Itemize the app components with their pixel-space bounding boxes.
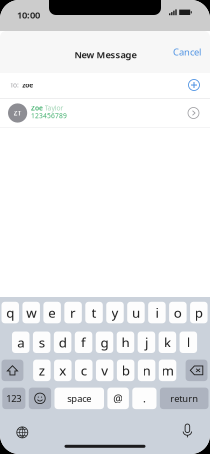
button[interactable]: Dictation — [176, 421, 198, 441]
staticText: o — [174, 304, 182, 321]
button[interactable]: x — [54, 360, 71, 381]
staticText: g — [100, 333, 108, 351]
staticText: 123 — [6, 392, 21, 405]
button[interactable]: k — [159, 331, 176, 353]
staticText: j — [145, 333, 148, 351]
staticText: return — [170, 392, 198, 405]
button[interactable]: r — [64, 302, 82, 323]
button[interactable]: h — [117, 331, 134, 353]
staticText: s — [39, 333, 45, 351]
staticText: v — [101, 361, 108, 379]
staticText: p — [195, 304, 203, 321]
staticText: c — [81, 361, 87, 379]
button[interactable]: y — [106, 302, 124, 323]
button[interactable]: s — [33, 331, 50, 353]
button[interactable]: a — [12, 331, 29, 353]
button[interactable]: q — [1, 302, 19, 323]
button[interactable]: i — [148, 302, 166, 323]
button[interactable] — [1, 360, 23, 381]
staticText: . — [143, 391, 146, 405]
staticText: Cancel — [173, 46, 201, 58]
staticText: e — [48, 304, 56, 321]
staticText: z — [39, 361, 45, 379]
button[interactable]: . — [132, 388, 156, 409]
staticText: y — [111, 304, 118, 321]
button[interactable]: p — [190, 302, 207, 323]
staticText: r — [70, 304, 76, 321]
staticText: d — [59, 333, 67, 351]
button[interactable]: g — [96, 331, 113, 353]
button[interactable]: l — [180, 331, 197, 353]
staticText: New Message — [74, 48, 136, 61]
staticText: x — [59, 361, 66, 379]
staticText: l — [187, 333, 190, 351]
button[interactable]: f — [75, 331, 92, 353]
button[interactable]: ZT — [0, 99, 210, 127]
staticText: 123456789 — [31, 111, 67, 120]
staticText: @ — [113, 391, 123, 405]
staticText: k — [164, 333, 171, 351]
button[interactable]: m — [159, 360, 176, 381]
button[interactable]: @ — [107, 388, 129, 409]
button[interactable]: Add contact — [183, 74, 205, 96]
button[interactable]: n — [138, 360, 155, 381]
staticText: m — [162, 361, 174, 379]
staticText: u — [132, 304, 140, 321]
staticText: 10:00 — [17, 9, 40, 21]
button[interactable]: Cancel — [167, 42, 207, 62]
staticText: b — [122, 361, 130, 379]
staticText: Zoe — [31, 104, 43, 112]
staticText: f — [81, 333, 86, 351]
staticText: w — [26, 304, 36, 321]
staticText: t — [91, 304, 96, 321]
button[interactable]: Next keyboard — [11, 422, 33, 442]
button[interactable]: o — [169, 302, 187, 323]
button[interactable] — [186, 360, 207, 381]
staticText: ZT — [14, 109, 22, 117]
staticText: space — [67, 392, 91, 405]
staticText: n — [143, 361, 151, 379]
button[interactable]: v — [96, 360, 113, 381]
button[interactable]: w — [22, 302, 40, 323]
button[interactable]: t — [85, 302, 103, 323]
button[interactable]: u — [127, 302, 145, 323]
button[interactable]: 123 — [2, 388, 25, 409]
staticText: h — [121, 333, 129, 351]
button[interactable] — [29, 388, 51, 409]
button[interactable]: d — [54, 331, 71, 353]
staticText: q — [6, 304, 14, 321]
staticText: a — [17, 333, 24, 351]
staticText: i — [155, 304, 158, 321]
staticText: zoe — [22, 80, 33, 89]
staticText: Taylor — [45, 104, 64, 112]
button[interactable]: space — [54, 388, 104, 409]
button[interactable]: e — [43, 302, 61, 323]
button[interactable]: c — [75, 360, 92, 381]
button[interactable]: z — [33, 360, 51, 381]
staticText: To: — [10, 80, 19, 89]
button[interactable]: b — [117, 360, 134, 381]
button[interactable]: return — [160, 388, 208, 409]
button[interactable]: j — [138, 331, 155, 353]
